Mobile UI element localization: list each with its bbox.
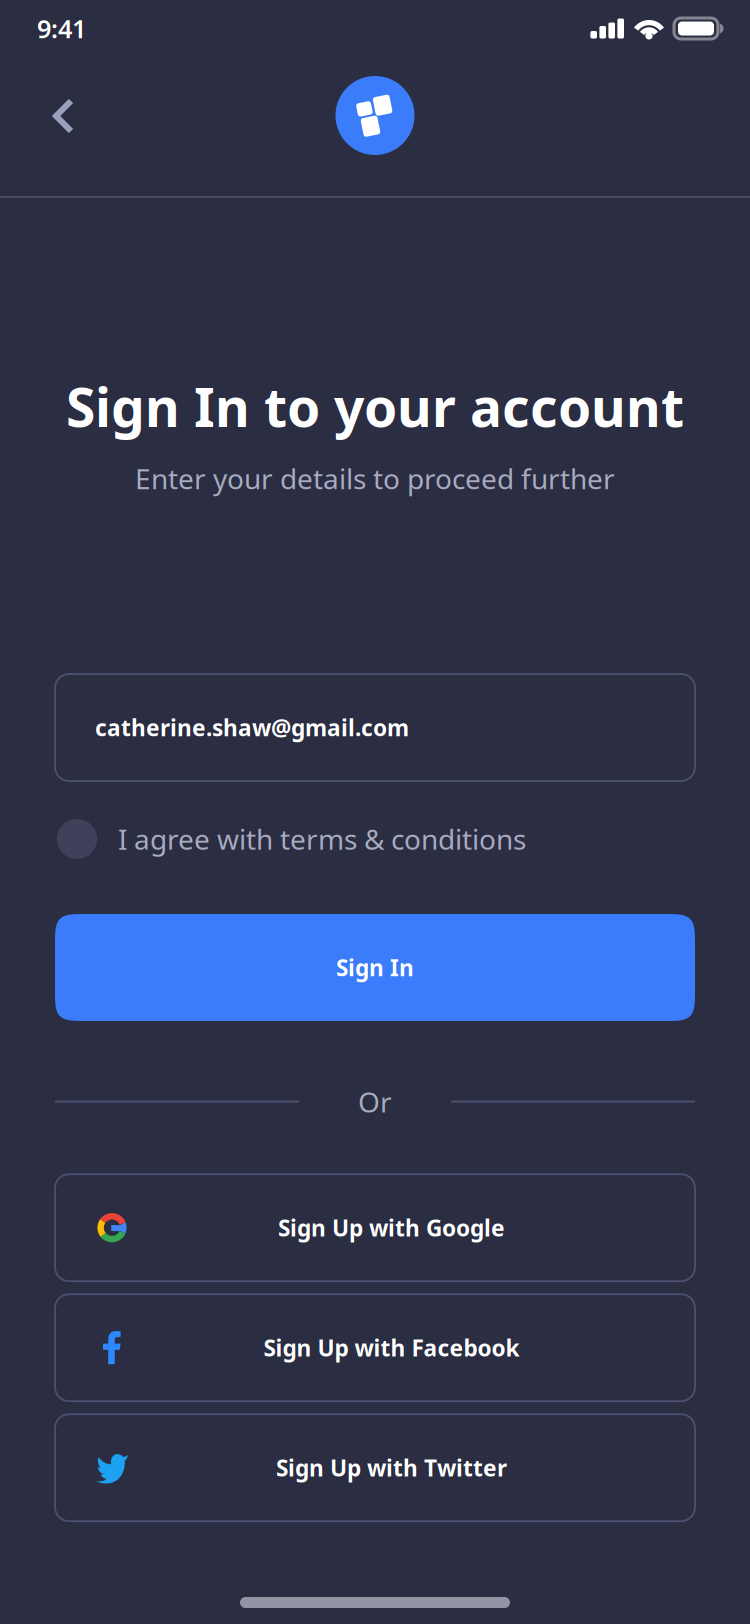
staticText: Enter your details to proceed further: [135, 460, 615, 497]
button[interactable]: Sign Up with Twitter: [55, 1414, 695, 1521]
button[interactable]: Sign In: [0, 914, 750, 1021]
button[interactable]: Back: [0, 57, 107, 174]
button[interactable]: Sign Up with Facebook: [55, 1294, 695, 1401]
staticText: I agree with terms & conditions: [118, 820, 526, 858]
staticText: 9:41: [37, 12, 86, 45]
staticText: Sign Up with Google: [278, 1213, 505, 1243]
button[interactable]: I agree with terms & conditions: [0, 818, 750, 860]
staticText: Sign In: [336, 952, 414, 983]
staticText: Sign In to your account: [66, 371, 684, 442]
staticText: catherine.shaw@gmail.com: [95, 712, 409, 743]
staticText: Sign Up with Twitter: [276, 1453, 507, 1483]
staticText: Sign Up with Facebook: [263, 1333, 519, 1363]
button[interactable]: Sign Up with Google: [55, 1174, 695, 1281]
staticText: Or: [358, 1083, 392, 1120]
